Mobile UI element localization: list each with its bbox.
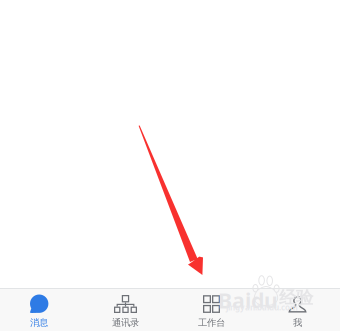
button[interactable]: 通讯录 [85,289,170,331]
button[interactable]: 工作台 [170,289,255,331]
staticText: 消息 [30,317,48,328]
staticText: 工作台 [198,317,225,328]
staticText: 我 [293,317,302,328]
button[interactable]: 消息 [0,289,85,331]
staticText: 通讯录 [112,317,139,328]
staticText: 经验 [279,287,313,308]
staticText: Baidu [218,286,278,314]
button[interactable]: 我 [255,289,340,331]
staticText: jingyan.baidu.com [226,302,298,313]
